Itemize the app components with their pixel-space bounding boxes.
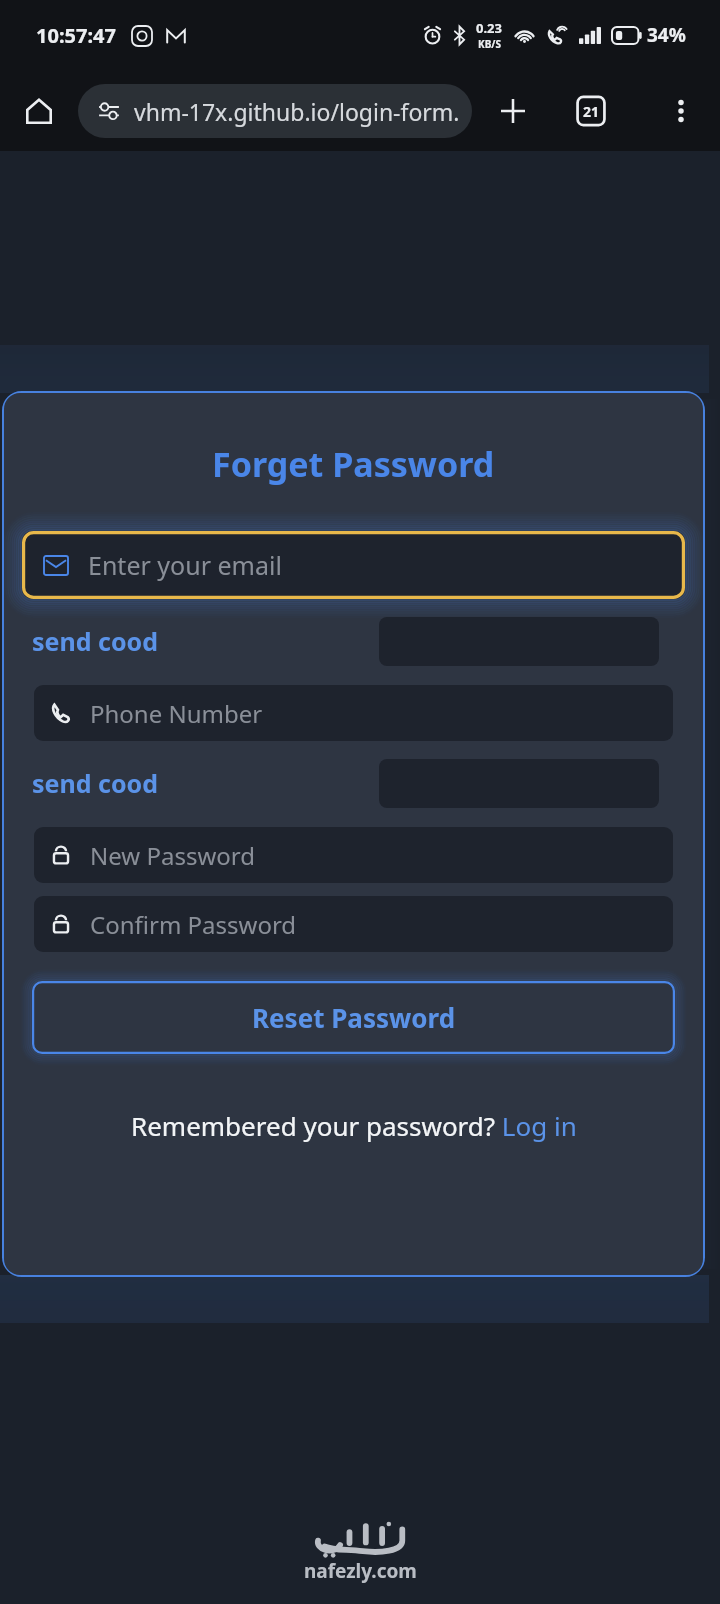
staticText: Confirm Password bbox=[90, 908, 297, 941]
button[interactable]: vhm-17x.github.io/login-form. bbox=[78, 84, 472, 138]
staticText: Reset Password bbox=[252, 1000, 456, 1035]
staticText: 34% bbox=[647, 22, 686, 48]
staticText: nafezly.com bbox=[304, 1558, 417, 1584]
staticText: vhm-17x.github.io/login-form. bbox=[134, 96, 460, 127]
button[interactable]: New Password bbox=[34, 827, 673, 883]
staticText: Enter your email bbox=[88, 548, 282, 582]
staticText: send cood bbox=[32, 766, 158, 800]
staticText: 21 bbox=[583, 102, 600, 121]
button[interactable]: Home bbox=[16, 88, 62, 134]
button[interactable]: Remembered your password? Log in bbox=[131, 1108, 577, 1143]
staticText: New Password bbox=[90, 839, 255, 872]
button[interactable]: send cood bbox=[26, 762, 164, 804]
button[interactable]: Enter your email bbox=[22, 531, 685, 599]
staticText: send cood bbox=[32, 624, 158, 658]
staticText: Phone Number bbox=[90, 697, 263, 730]
button[interactable]: send cood bbox=[26, 620, 164, 662]
staticText: Forget Password bbox=[212, 441, 495, 487]
button[interactable]: New tab bbox=[489, 87, 537, 135]
button[interactable]: Tabs, 21 open bbox=[567, 87, 615, 135]
staticText: 0.23 bbox=[476, 19, 502, 37]
button[interactable]: More options bbox=[658, 88, 704, 134]
staticText: KB/S bbox=[478, 37, 501, 51]
staticText: 10:57:47 bbox=[36, 22, 116, 49]
button[interactable]: Phone Number bbox=[34, 685, 673, 741]
button[interactable]: Confirm Password bbox=[34, 896, 673, 952]
button[interactable]: Reset Password bbox=[32, 981, 675, 1054]
